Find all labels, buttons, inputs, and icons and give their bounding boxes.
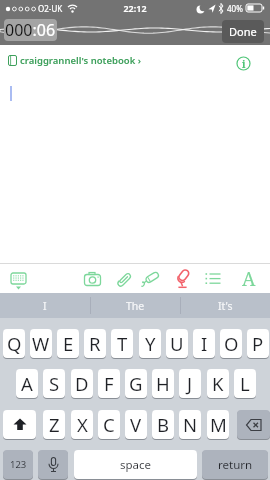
button[interactable]: A [238,266,260,290]
staticText: It's [218,299,233,313]
button[interactable]: 123 [3,450,33,479]
button[interactable] [9,271,29,290]
staticText: O [224,331,239,356]
staticText: Y [145,331,156,356]
staticText: M [210,412,227,437]
staticText: I [43,299,47,313]
button[interactable]: D [71,369,93,398]
button[interactable]: Z [43,410,65,439]
staticText: 123 [10,458,27,471]
button[interactable] [205,272,221,286]
staticText: Done [229,24,257,39]
staticText: G [129,371,143,396]
button[interactable]: P [247,329,269,358]
staticText: P [252,331,264,356]
button[interactable]: H [152,369,174,398]
staticText: I [201,331,208,356]
staticText: 000:06 [5,19,56,41]
staticText: F [104,371,114,396]
button[interactable]: craiggrannell's notebook › [8,54,141,67]
staticText: A [242,266,256,290]
staticText: R [89,331,101,356]
button[interactable]: T [111,329,133,358]
staticText: U [170,331,184,356]
button[interactable]: J [179,369,201,398]
staticText: T [117,331,128,356]
button[interactable]: N [179,410,201,439]
button[interactable]: Y [139,329,161,358]
button[interactable]: W [30,329,52,358]
button[interactable]: F [98,369,120,398]
staticText: N [183,412,198,437]
staticText: X [77,412,88,437]
button[interactable]: Q [3,329,25,358]
button[interactable]: O [220,329,242,358]
button[interactable]: Done [222,20,264,43]
button[interactable]: L [234,369,256,398]
button[interactable] [84,272,101,286]
button[interactable] [141,271,159,288]
button[interactable]: B [152,410,174,439]
button[interactable]: A [16,369,38,398]
button[interactable]: E [57,329,79,358]
button[interactable]: V [125,410,147,439]
staticText: D [75,371,89,396]
staticText: H [156,371,170,396]
button[interactable]: return [202,450,268,479]
staticText: A [21,371,33,396]
staticText: V [130,412,142,437]
button[interactable]: The [91,293,180,318]
staticText: return [218,457,253,473]
staticText: craiggrannell's notebook › [20,54,141,67]
button[interactable]: K [207,369,229,398]
button[interactable]: space [74,450,197,479]
button[interactable] [116,271,132,288]
staticText: O2-UK [38,3,63,14]
staticText: J [187,371,193,396]
staticText: K [212,371,224,396]
staticText: L [240,371,250,396]
button[interactable]: R [84,329,106,358]
staticText: B [157,412,170,437]
button[interactable]: M [207,410,229,439]
button[interactable] [237,410,270,439]
button[interactable]: It's [181,293,270,318]
button[interactable]: S [43,369,65,398]
staticText: Z [49,412,60,437]
button[interactable] [175,269,193,290]
staticText: i [242,57,246,71]
button[interactable]: i [235,55,252,72]
button[interactable]: X [71,410,93,439]
button[interactable]: U [166,329,188,358]
button[interactable] [3,410,36,439]
staticText: 40% [227,3,243,14]
staticText: E [63,331,74,356]
button[interactable] [38,450,68,479]
button[interactable]: C [98,410,120,439]
staticText: W [32,331,50,356]
staticText: C [103,412,115,437]
staticText: 22:12 [0,2,270,14]
button[interactable]: I [193,329,215,358]
button[interactable]: I [0,293,90,318]
staticText: S [49,371,60,396]
staticText: The [126,299,145,313]
staticText: Q [7,331,22,356]
button[interactable]: G [125,369,147,398]
staticText: space [120,457,152,473]
